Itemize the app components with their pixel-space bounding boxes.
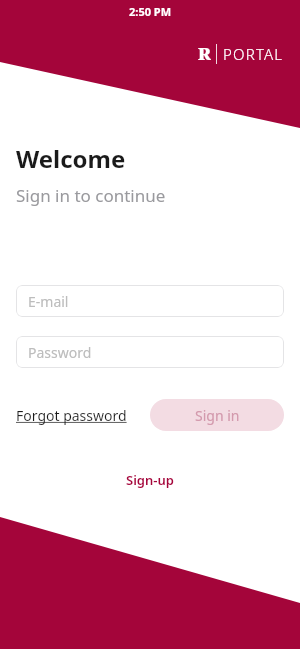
staticText: PORTAL — [223, 44, 284, 64]
staticText: Forgot password — [16, 406, 127, 425]
staticText: E-mail — [28, 292, 69, 311]
staticText: 2:50 PM — [129, 4, 172, 19]
staticText: Sign-up — [126, 471, 174, 489]
button[interactable]: Password — [16, 336, 284, 368]
button[interactable]: E-mail — [16, 285, 284, 317]
staticText: Sign in — [195, 406, 240, 425]
button[interactable]: Welcome — [16, 142, 126, 175]
staticText: Sign in to continue — [16, 184, 166, 207]
button[interactable]: Sign in — [150, 399, 284, 431]
staticText: Password — [28, 343, 92, 362]
staticText: R — [198, 42, 211, 65]
button[interactable]: Forgot password — [16, 400, 127, 431]
button[interactable]: Sign-up — [120, 465, 180, 495]
button[interactable]: R Portal logo — [198, 42, 284, 65]
